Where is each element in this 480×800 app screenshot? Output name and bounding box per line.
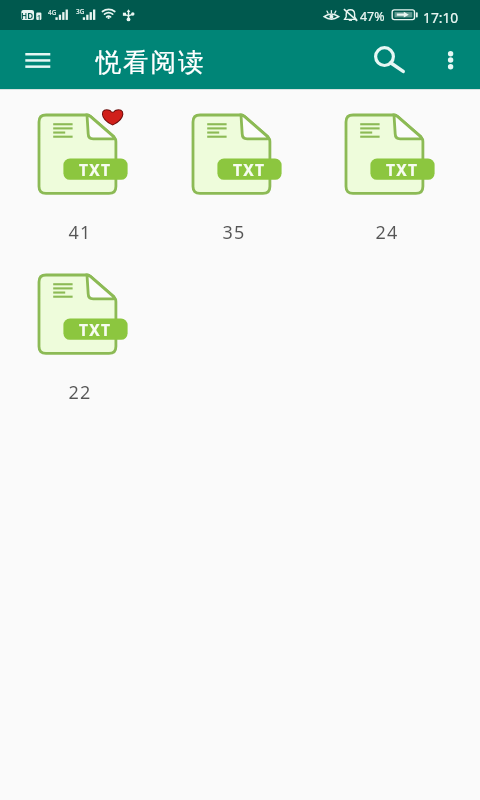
staticText: 35 xyxy=(222,220,246,245)
staticText: 17:10 xyxy=(423,8,459,27)
staticText: 4G xyxy=(48,8,57,17)
staticText: 3G xyxy=(76,7,85,16)
staticText: 41 xyxy=(68,220,92,245)
button[interactable]: More options xyxy=(434,35,467,83)
button[interactable]: TXT xyxy=(346,115,423,245)
staticText: TXT xyxy=(233,159,266,180)
staticText: 1 xyxy=(37,13,41,20)
button[interactable]: TXT xyxy=(39,275,116,405)
staticText: 22 xyxy=(68,380,92,405)
button[interactable]: TXT xyxy=(193,115,270,245)
staticText: 24 xyxy=(375,220,399,245)
button[interactable]: Search xyxy=(361,35,408,83)
staticText: 47% xyxy=(360,8,385,25)
staticText: 悦看阅读 xyxy=(96,46,206,78)
staticText: HD xyxy=(21,10,34,20)
button[interactable]: Open navigation drawer xyxy=(13,37,61,81)
button[interactable]: TXT xyxy=(39,115,116,245)
staticText: TXT xyxy=(386,159,419,180)
staticText: TXT xyxy=(79,319,112,340)
staticText: TXT xyxy=(79,159,112,180)
